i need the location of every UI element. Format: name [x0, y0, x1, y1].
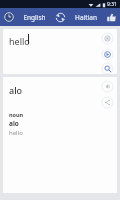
staticText: hello [9, 129, 23, 137]
staticText: hello [9, 35, 30, 47]
staticText: noun [9, 111, 24, 118]
button[interactable]: Haitian [69, 8, 102, 26]
button[interactable]: English [18, 8, 51, 26]
button[interactable]: Swap languages [51, 8, 69, 26]
staticText: alo [9, 84, 23, 96]
button[interactable]: Share [99, 94, 115, 110]
staticText: English [23, 13, 46, 22]
button[interactable]: Listen [99, 78, 115, 94]
button[interactable]: History [0, 8, 18, 26]
staticText: 9:31 [107, 1, 117, 8]
button[interactable]: More [102, 8, 120, 26]
staticText: alo [9, 119, 19, 128]
button[interactable]: Clear [99, 30, 115, 46]
button[interactable]: Search [99, 62, 115, 74]
staticText: Haitian [75, 13, 97, 22]
button[interactable]: Listen [99, 46, 115, 62]
